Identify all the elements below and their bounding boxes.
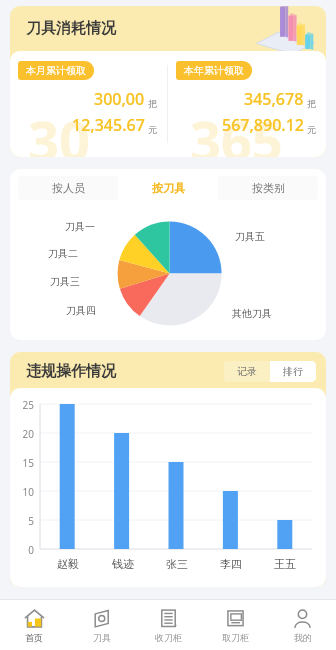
staticText: 567,890.12 <box>222 114 304 136</box>
staticText: 按刀具 <box>152 181 185 195</box>
button[interactable]: 收刀柜 <box>135 600 202 650</box>
staticText: 王五 <box>274 557 296 571</box>
staticText: 30 <box>28 103 90 157</box>
staticText: 收刀柜 <box>155 632 182 643</box>
staticText: 其他刀具 <box>232 307 272 320</box>
staticText: 张三 <box>166 557 188 571</box>
staticText: 0 <box>16 543 34 557</box>
staticText: 把 <box>307 98 316 109</box>
staticText: 钱迹 <box>112 557 134 571</box>
button[interactable]: 记录 <box>224 361 270 382</box>
staticText: 我的 <box>294 632 312 643</box>
staticText: 刀具消耗情况 <box>26 19 116 38</box>
staticText: 李四 <box>220 557 242 571</box>
staticText: 排行 <box>283 365 303 378</box>
staticText: 元 <box>148 124 157 135</box>
staticText: 刀具一 <box>65 220 95 233</box>
staticText: 300,00 <box>94 88 145 110</box>
staticText: 把 <box>148 98 157 109</box>
staticText: 5 <box>16 514 34 528</box>
staticText: 违规操作情况 <box>26 362 116 381</box>
staticText: 刀具二 <box>48 247 78 260</box>
button[interactable]: 按刀具 <box>118 176 218 200</box>
button[interactable]: 首页 <box>0 600 68 650</box>
button[interactable]: 排行 <box>270 361 316 382</box>
staticText: 10 <box>16 485 34 499</box>
staticText: 15 <box>16 456 34 470</box>
staticText: 本月累计领取 <box>26 64 86 77</box>
staticText: 首页 <box>25 632 43 643</box>
staticText: 赵毅 <box>57 557 79 571</box>
staticText: 取刀柜 <box>222 632 249 643</box>
staticText: 365 <box>190 103 283 157</box>
button[interactable]: 按类别 <box>218 176 318 200</box>
staticText: 元 <box>307 124 316 135</box>
staticText: 按类别 <box>252 181 285 195</box>
staticText: 刀具五 <box>235 230 265 243</box>
button[interactable]: 取刀柜 <box>202 600 269 650</box>
button[interactable]: 我的 <box>269 600 336 650</box>
staticText: 本年累计领取 <box>184 64 244 77</box>
staticText: 刀具四 <box>66 304 96 317</box>
button[interactable]: 按人员 <box>18 176 118 200</box>
staticText: 25 <box>16 398 34 412</box>
staticText: 按人员 <box>52 181 85 195</box>
staticText: 12,345.67 <box>72 114 145 136</box>
button[interactable]: 刀具 <box>68 600 135 650</box>
staticText: 345,678 <box>244 88 304 110</box>
staticText: 记录 <box>237 365 257 378</box>
staticText: 刀具 <box>93 632 111 643</box>
staticText: 刀具三 <box>50 275 80 288</box>
staticText: 20 <box>16 427 34 441</box>
